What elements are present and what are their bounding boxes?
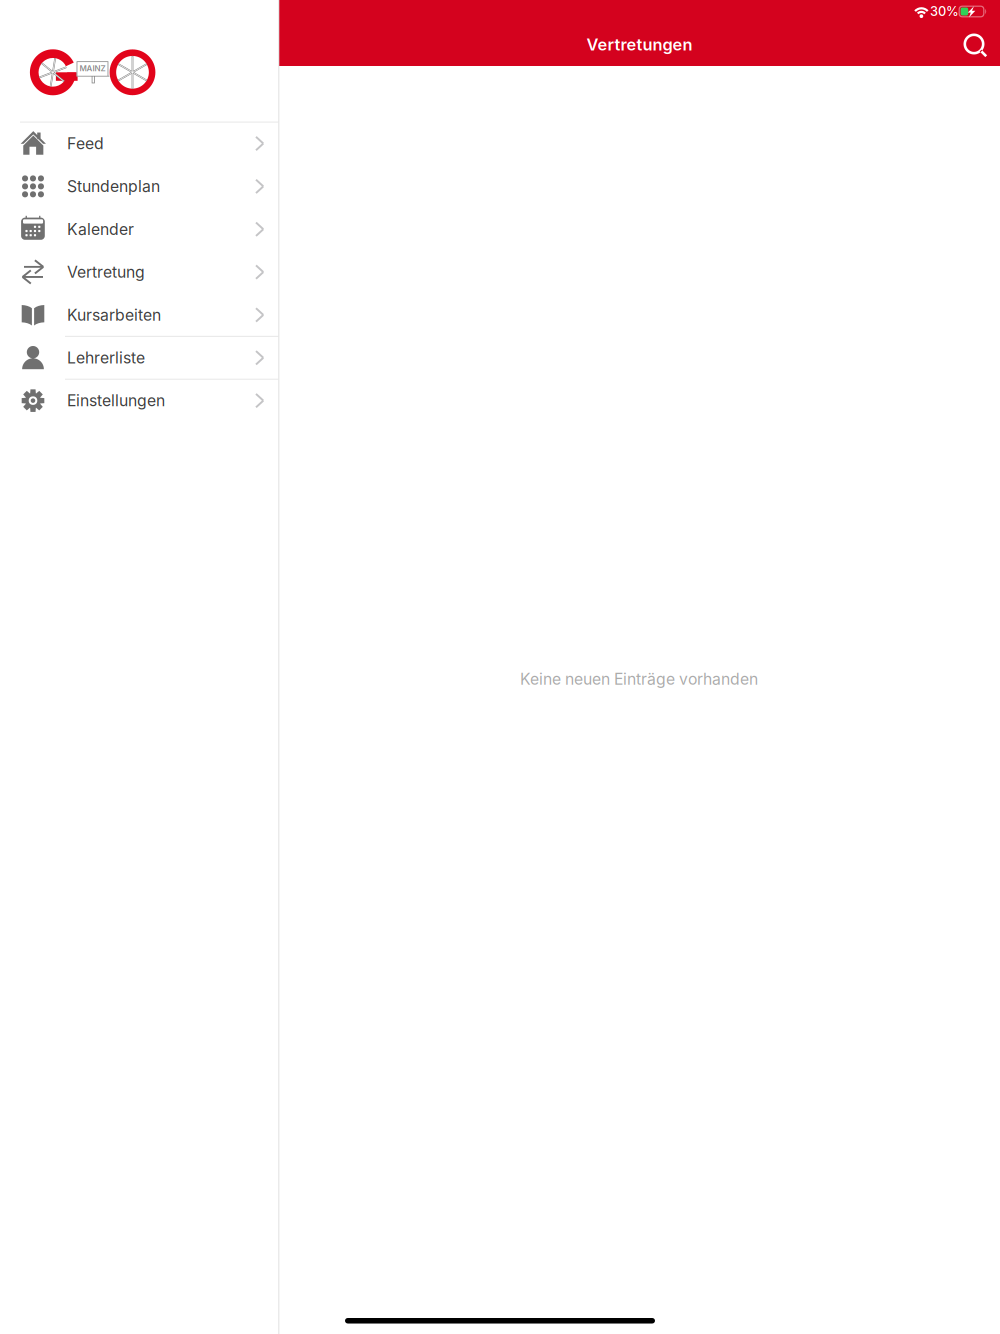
button[interactable]: Vertretung — [0, 251, 279, 293]
button[interactable]: Suchen — [952, 22, 996, 66]
button[interactable]: Stundenplan — [0, 165, 279, 208]
staticText: Kalender — [67, 220, 134, 239]
staticText: Kursarbeiten — [67, 305, 161, 324]
staticText: 30% — [930, 4, 959, 19]
staticText: MAINZ — [80, 64, 106, 73]
staticText: Vertretung — [67, 263, 145, 282]
staticText: Vertretungen — [586, 35, 692, 54]
button[interactable]: Kursarbeiten — [0, 293, 279, 336]
button[interactable]: Lehrerliste — [0, 336, 279, 379]
staticText: Einstellungen — [67, 391, 165, 410]
staticText: Keine neuen Einträge vorhanden — [520, 669, 758, 688]
button[interactable]: Einstellungen — [0, 379, 279, 422]
staticText: Stundenplan — [67, 177, 160, 196]
staticText: Lehrerliste — [67, 348, 145, 367]
button[interactable]: Feed — [0, 122, 279, 165]
staticText: Feed — [67, 134, 104, 153]
button[interactable]: Kalender — [0, 208, 279, 251]
